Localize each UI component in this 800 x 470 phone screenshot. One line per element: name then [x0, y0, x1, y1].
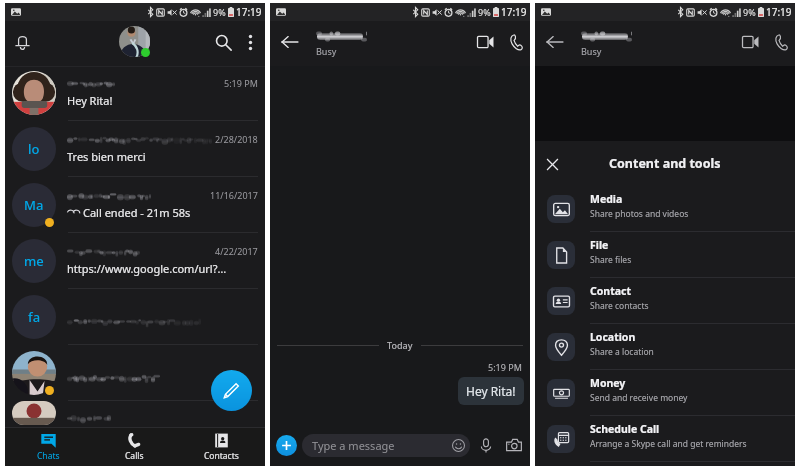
- staticText: 17:19: [236, 5, 262, 19]
- staticText: 9%: [478, 6, 491, 18]
- staticText: 9%: [213, 6, 226, 18]
- button[interactable]: lo: [5, 121, 265, 176]
- staticText: Share files: [590, 254, 632, 266]
- button[interactable]: Money: [535, 370, 795, 415]
- button[interactable]: Audio call: [768, 27, 793, 57]
- staticText: Arrange a Skype call and get reminders: [590, 438, 747, 450]
- staticText: fa: [28, 308, 41, 326]
- button[interactable]: File: [535, 232, 795, 277]
- staticText: 17:19: [766, 5, 792, 19]
- staticText: 4/22/2017: [215, 245, 258, 257]
- button[interactable]: Search: [209, 28, 237, 56]
- button[interactable]: Ma: [5, 177, 265, 232]
- staticText: me: [24, 252, 44, 270]
- staticText: Money: [590, 376, 626, 390]
- staticText: Contact: [590, 284, 631, 298]
- button[interactable]: Media: [535, 186, 795, 231]
- button[interactable]: Type a message: [302, 434, 470, 457]
- staticText: 11/16/2017: [210, 189, 258, 201]
- staticText: Send and receive money: [590, 392, 688, 404]
- staticText: 2/28/2018: [215, 133, 258, 145]
- staticText: File: [590, 238, 609, 252]
- button[interactable]: Hey Rita!: [458, 377, 524, 405]
- staticText: Ma: [24, 196, 44, 214]
- button[interactable]: Back: [538, 25, 572, 59]
- staticText: Schedule Call: [590, 422, 660, 436]
- button[interactable]: More options: [237, 29, 263, 55]
- button[interactable]: 5:19 PM: [5, 65, 265, 120]
- button[interactable]: Location: [535, 324, 795, 369]
- button[interactable]: Close: [535, 147, 569, 181]
- staticText: Today: [387, 339, 413, 351]
- staticText: Contacts: [204, 450, 239, 462]
- button[interactable]: Contacts: [178, 428, 265, 466]
- staticText: Chats: [37, 450, 60, 462]
- staticText: Share a location: [590, 346, 654, 358]
- button[interactable]: Profile: [119, 26, 150, 57]
- staticText: lo: [28, 140, 40, 158]
- button[interactable]: Video call: [470, 27, 500, 57]
- button[interactable]: Add content: [276, 435, 297, 456]
- button[interactable]: Video call: [735, 27, 765, 57]
- button[interactable]: [5, 345, 265, 400]
- button[interactable]: Back: [273, 25, 307, 59]
- staticText: Content and tools: [609, 155, 721, 172]
- staticText: Busy: [581, 45, 602, 57]
- staticText: Busy: [316, 45, 337, 57]
- button[interactable]: Camera: [504, 435, 524, 455]
- button[interactable]: me: [5, 233, 265, 288]
- button[interactable]: fa: [5, 289, 265, 344]
- staticText: https://www.google.com/url?…: [67, 261, 227, 276]
- button[interactable]: Contact: [535, 278, 795, 323]
- staticText: Tres bien merci: [67, 149, 146, 164]
- staticText: Share contacts: [590, 300, 649, 312]
- staticText: Type a message: [312, 438, 395, 453]
- button[interactable]: Chats: [5, 428, 91, 466]
- button[interactable]: Schedule Call: [535, 416, 795, 461]
- button[interactable]: Voice message: [476, 435, 496, 455]
- staticText: 5:19 PM: [488, 361, 522, 373]
- staticText: 9%: [743, 6, 756, 18]
- button[interactable]: Audio call: [503, 27, 528, 57]
- staticText: Hey Rita!: [67, 93, 113, 108]
- staticText: Hey Rita!: [466, 383, 516, 399]
- staticText: Calls: [125, 450, 144, 462]
- button[interactable]: New chat: [211, 370, 252, 411]
- staticText: 5:19 PM: [224, 77, 258, 89]
- button[interactable]: Notifications: [8, 28, 36, 56]
- staticText: Media: [590, 192, 623, 206]
- staticText: 17:19: [501, 5, 527, 19]
- staticText: Share photos and videos: [590, 208, 689, 220]
- button[interactable]: Calls: [91, 428, 178, 466]
- button[interactable]: [5, 401, 265, 425]
- staticText: Call ended - 21m 58s: [83, 205, 191, 220]
- staticText: Location: [590, 330, 636, 344]
